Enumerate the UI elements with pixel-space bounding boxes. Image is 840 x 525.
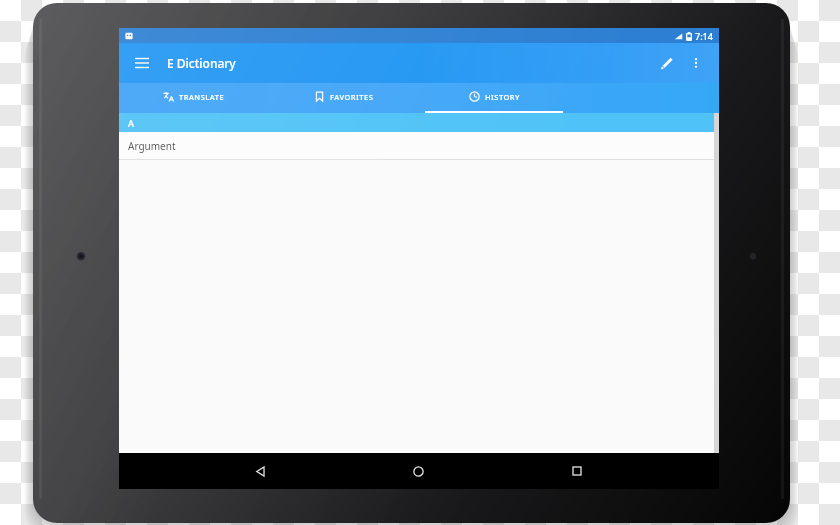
button[interactable]: FAVORITES — [269, 83, 419, 113]
button[interactable]: Home — [401, 454, 435, 488]
staticText: A — [128, 117, 134, 129]
button[interactable]: Edit — [653, 50, 679, 76]
button[interactable]: More options — [683, 50, 709, 76]
staticText: Argument — [128, 139, 176, 153]
staticText: FAVORITES — [330, 92, 374, 102]
button[interactable]: HISTORY — [419, 83, 569, 113]
button[interactable]: Back — [243, 454, 277, 488]
staticText: 7:14 — [695, 30, 713, 42]
staticText: HISTORY — [485, 92, 520, 102]
button[interactable]: Recent apps — [560, 454, 594, 488]
button[interactable]: TRANSLATE — [119, 83, 269, 113]
button[interactable]: Argument — [119, 132, 719, 159]
staticText: E Dictionary — [167, 55, 236, 71]
button[interactable]: Open navigation drawer — [129, 50, 155, 76]
staticText: TRANSLATE — [179, 92, 225, 102]
